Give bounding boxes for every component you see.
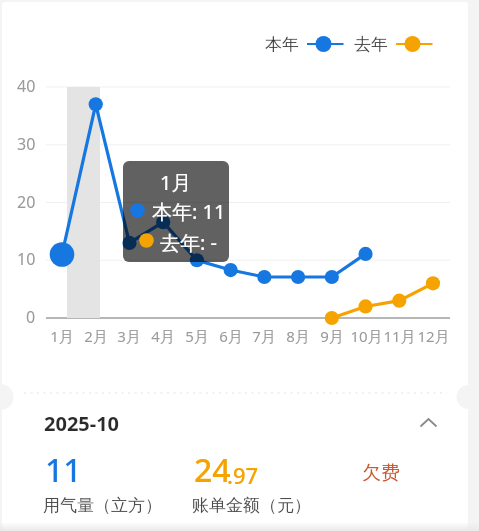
staticText: 用气量（立方） — [43, 495, 162, 516]
staticText: 10月 — [350, 326, 383, 346]
staticText: 去年 — [354, 34, 388, 55]
staticText: 本年 — [265, 34, 299, 55]
staticText: 1月 — [50, 326, 74, 346]
staticText: 24 — [194, 448, 231, 492]
button[interactable]: 2025-10 — [30, 404, 454, 442]
staticText: 9月 — [320, 326, 344, 346]
staticText: 6月 — [219, 326, 243, 346]
staticText: 5月 — [185, 326, 209, 346]
staticText: 2025-10 — [44, 410, 120, 437]
staticText: 欠费 — [362, 461, 400, 485]
staticText: 40 — [17, 75, 36, 97]
staticText: 11月 — [383, 326, 416, 346]
staticText: 本年: 11 — [152, 198, 226, 225]
staticText: 3月 — [117, 326, 141, 346]
staticText: 10 — [17, 248, 36, 270]
button[interactable]: 本年 — [265, 32, 433, 56]
staticText: 1月 — [160, 169, 192, 196]
staticText: 8月 — [286, 326, 310, 346]
staticText: 去年: - — [160, 229, 217, 256]
staticText: 0 — [26, 306, 36, 328]
staticText: 2月 — [84, 326, 108, 346]
staticText: 20 — [17, 191, 36, 213]
staticText: 4月 — [151, 326, 175, 346]
staticText: .97 — [227, 460, 259, 490]
staticText: 30 — [17, 133, 36, 155]
staticText: 账单金额（元） — [192, 495, 311, 516]
other: Collapse — [415, 409, 441, 435]
staticText: 7月 — [252, 326, 276, 346]
staticText: 11 — [45, 448, 82, 492]
staticText: 12月 — [417, 326, 450, 346]
